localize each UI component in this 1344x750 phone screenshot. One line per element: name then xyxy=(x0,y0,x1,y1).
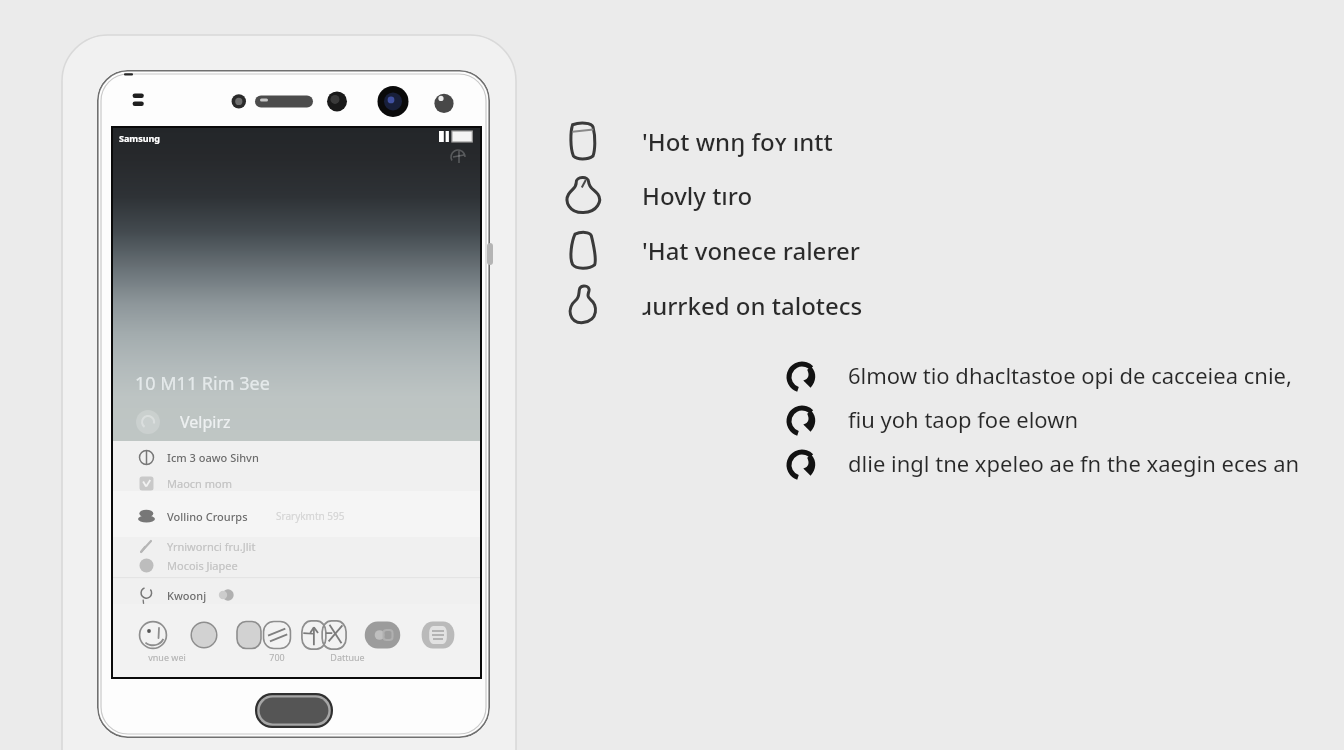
staticText: Samsung xyxy=(119,132,161,144)
staticText: 'Hat vonece ralerer xyxy=(642,234,860,267)
button[interactable]: Mocois Jiapee xyxy=(138,553,238,577)
staticText: Velpirz xyxy=(180,411,231,433)
button[interactable]: dlie ingl tne xpeleo ae fn the xaegin ec… xyxy=(848,443,1300,483)
staticText: vnue wei xyxy=(148,651,186,663)
button[interactable]: Power xyxy=(487,243,493,265)
button[interactable]: 'Hot wnŋ foʏ ıntt xyxy=(642,119,833,163)
staticText: Vollino Crourps xyxy=(167,509,248,524)
staticText: Yrniwornci fru.Jlit xyxy=(167,539,256,554)
button[interactable]: Kwoonj xyxy=(138,583,234,607)
button[interactable]: Hovly tıro xyxy=(642,173,753,217)
button[interactable]: Icm 3 oawo Sihvn xyxy=(138,445,259,469)
button[interactable]: 700 xyxy=(234,619,264,651)
staticText: Maocn mom xyxy=(167,476,232,491)
button[interactable]: Yrniwornci fru.Jlit xyxy=(138,534,256,558)
staticText: 10 M11 Rim 3ee xyxy=(135,371,270,395)
button[interactable]: Edit xyxy=(261,619,293,651)
button[interactable]: Dattuue xyxy=(301,619,347,651)
button[interactable]: Home xyxy=(255,693,333,728)
staticText: 6lmow tio dhacltastoe opi de cacceiea cn… xyxy=(848,360,1292,390)
staticText: ɹurrked on talotecs xyxy=(642,289,863,322)
button[interactable]: More xyxy=(421,619,455,651)
staticText: fiu yoh taop foe elown xyxy=(848,404,1079,434)
staticText: Hovly tıro xyxy=(642,179,753,212)
button[interactable]: Vollino Crourps xyxy=(138,504,345,528)
button[interactable]: Maocn mom xyxy=(138,471,232,495)
button[interactable]: Messages xyxy=(364,619,401,651)
staticText: Dattuue xyxy=(330,651,365,663)
staticText: Srarykmtn 595 xyxy=(276,509,345,523)
button[interactable]: ɹurrked on talotecs xyxy=(642,283,863,327)
button[interactable]: 6lmow tio dhacltastoe opi de cacceiea cn… xyxy=(848,355,1292,395)
staticText: Kwoonj xyxy=(167,588,207,603)
staticText: Icm 3 oawo Sihvn xyxy=(167,450,259,465)
staticText: dlie ingl tne xpeleo ae fn the xaegin ec… xyxy=(848,448,1300,478)
button[interactable]: Favourites xyxy=(188,619,220,651)
button[interactable]: 'Hat vonece ralerer xyxy=(642,228,860,272)
staticText: 'Hot wnŋ foʏ ıntt xyxy=(642,125,833,158)
button[interactable]: fiu yoh taop foe elown xyxy=(848,399,1079,439)
button[interactable]: vnue wei xyxy=(137,619,169,651)
staticText: 700 xyxy=(269,651,285,663)
staticText: Mocois Jiapee xyxy=(167,558,238,573)
